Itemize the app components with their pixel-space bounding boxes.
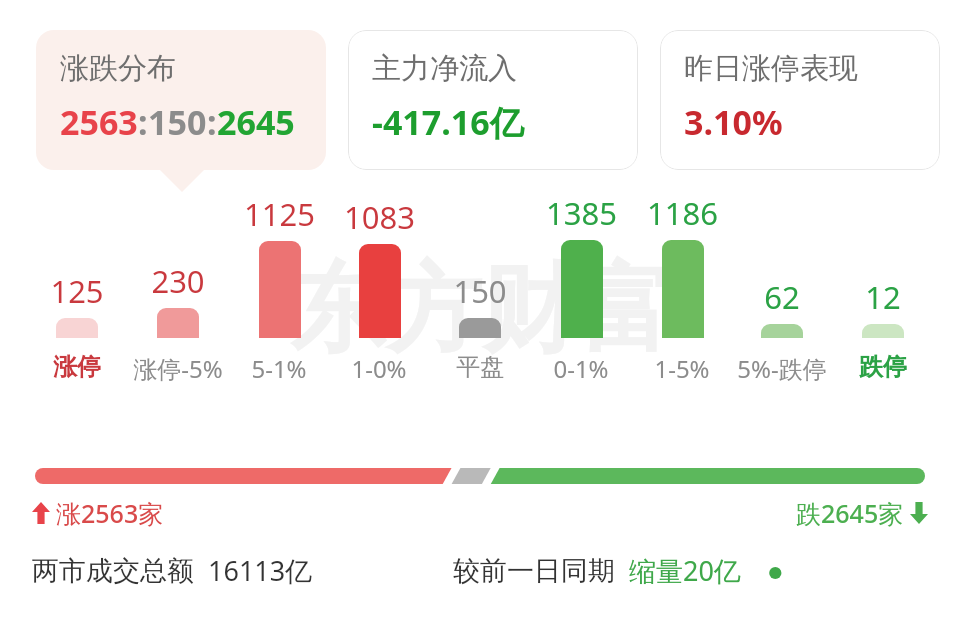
staticText: 1-0% bbox=[351, 352, 407, 385]
staticText: 16113亿 bbox=[208, 552, 313, 589]
button[interactable]: 1083 bbox=[332, 192, 426, 385]
button[interactable]: 150 bbox=[433, 192, 527, 382]
button[interactable]: 昨日涨停表现 bbox=[660, 30, 940, 170]
staticText: 两市成交总额 bbox=[32, 554, 194, 588]
button[interactable]: 62 bbox=[735, 192, 829, 385]
staticText: 涨跌分布 bbox=[60, 50, 176, 87]
staticText: 150 bbox=[148, 99, 207, 145]
button[interactable]: 1125 bbox=[232, 192, 326, 385]
button[interactable]: 主力净流入 bbox=[348, 30, 638, 170]
staticText: 12 bbox=[865, 276, 901, 318]
staticText: 0-1% bbox=[553, 352, 609, 385]
staticText: 跌2645家 bbox=[796, 496, 904, 530]
staticText: 缩量20亿 bbox=[629, 552, 741, 589]
button[interactable]: 125 bbox=[30, 192, 124, 382]
staticText: 1083 bbox=[344, 196, 415, 238]
staticText: 平盘 bbox=[456, 352, 504, 382]
staticText: 1-5% bbox=[654, 352, 710, 385]
staticText: 62 bbox=[764, 276, 800, 318]
staticText: -417.16亿 bbox=[372, 99, 524, 145]
staticText: 跌停 bbox=[859, 352, 907, 382]
staticText: : bbox=[207, 99, 217, 145]
staticText: 涨停 bbox=[53, 352, 101, 382]
staticText: 2563 bbox=[60, 99, 138, 145]
staticText: 230 bbox=[151, 260, 205, 302]
staticText: 东方财富 bbox=[290, 250, 674, 371]
staticText: 1125 bbox=[244, 193, 315, 235]
staticText: 5-1% bbox=[251, 352, 307, 385]
button[interactable]: 1385 bbox=[534, 192, 628, 385]
staticText: 涨停-5% bbox=[133, 352, 223, 385]
staticText: 125 bbox=[50, 270, 104, 312]
staticText: 涨2563家 bbox=[56, 496, 164, 530]
staticText: 2645 bbox=[217, 99, 295, 145]
button[interactable]: 涨跌分布 bbox=[36, 30, 326, 170]
staticText: 1186 bbox=[647, 192, 718, 234]
button[interactable]: 230 bbox=[131, 192, 225, 385]
staticText: : bbox=[138, 99, 148, 145]
staticText: 昨日涨停表现 bbox=[684, 50, 858, 87]
button[interactable]: 12 bbox=[836, 192, 930, 382]
staticText: 较前一日同期 bbox=[453, 554, 615, 588]
staticText: 150 bbox=[453, 270, 507, 312]
staticText: 1385 bbox=[546, 192, 617, 234]
staticText: 5%-跌停 bbox=[737, 352, 827, 385]
staticText: 主力净流入 bbox=[372, 50, 517, 87]
staticText: 3.10% bbox=[684, 99, 783, 145]
button[interactable]: 1186 bbox=[635, 192, 729, 385]
